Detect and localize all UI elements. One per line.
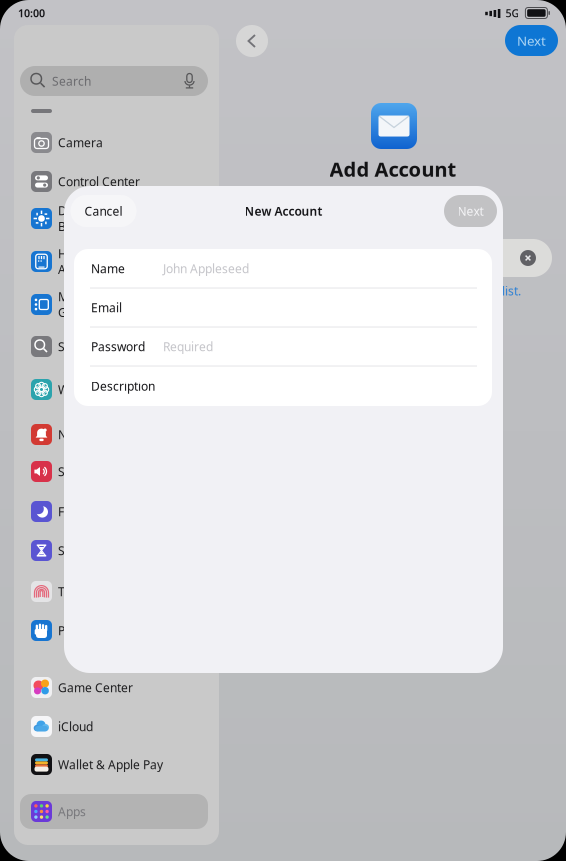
staticText: Name <box>91 260 125 276</box>
button[interactable]: Wallpaper <box>20 372 208 407</box>
button[interactable]: Search <box>20 329 208 364</box>
button[interactable]: Wallet & Apple Pay <box>20 747 208 782</box>
staticText: Camera <box>58 134 103 150</box>
button[interactable]: Sounds <box>20 454 208 489</box>
button[interactable]: Camera <box>20 125 208 160</box>
button[interactable]: Apps <box>20 794 208 829</box>
button[interactable]: Touch ID & Passcode <box>20 574 208 609</box>
staticText: list. <box>502 283 521 299</box>
staticText: Privacy & Security <box>58 622 158 638</box>
button[interactable]: Multitasking & <box>20 287 208 322</box>
staticText: Password <box>91 338 145 354</box>
staticText: Next <box>517 32 546 49</box>
button[interactable]: Notifications <box>20 417 208 452</box>
button[interactable]: Game Center <box>20 670 208 705</box>
button[interactable]: Back <box>236 25 268 57</box>
staticText: App Library <box>58 261 122 277</box>
staticText: Display & <box>58 203 111 218</box>
staticText: Focus <box>58 503 90 519</box>
staticText: Wallpaper <box>58 381 115 397</box>
staticText: Email <box>91 299 122 315</box>
staticText: Add Account <box>329 156 456 182</box>
button[interactable]: Focus <box>20 494 208 529</box>
staticText: Next <box>457 203 483 219</box>
staticText: Brightness <box>58 218 118 234</box>
staticText: Description <box>91 378 155 394</box>
button[interactable]: Display & <box>20 201 208 236</box>
staticText: Gestures <box>58 304 109 320</box>
staticText: Control Center <box>58 173 140 189</box>
button[interactable]: Home Screen & <box>20 244 208 279</box>
staticText: Notifications <box>58 426 128 442</box>
staticText: Search <box>58 338 97 354</box>
staticText: Wallet & Apple Pay <box>58 756 163 772</box>
staticText: Screen Time <box>58 542 128 558</box>
button[interactable]: Privacy & Security <box>20 613 208 648</box>
staticText: Cancel <box>84 203 122 219</box>
button[interactable]: Next <box>444 195 497 227</box>
staticText: Search <box>52 73 91 89</box>
button[interactable]: Cancel <box>70 195 136 227</box>
staticText: Game Center <box>58 679 133 695</box>
staticText: Home Screen & <box>58 246 146 261</box>
staticText: iCloud <box>58 718 93 734</box>
staticText: New Account <box>244 203 322 219</box>
staticText: Touch ID & Passcode <box>58 583 175 599</box>
staticText: Apps <box>58 803 86 819</box>
staticText: Sounds <box>58 463 99 479</box>
button[interactable]: Clear text <box>520 250 536 266</box>
staticText: 10:00 <box>18 6 45 20</box>
staticText: Required <box>163 338 213 354</box>
button[interactable]: Control Center <box>20 164 208 199</box>
button[interactable]: Next <box>505 25 558 56</box>
button[interactable]: Screen Time <box>20 533 208 568</box>
staticText: Multitasking & <box>58 289 138 304</box>
staticText: 5G <box>505 6 519 20</box>
button[interactable]: iCloud <box>20 709 208 744</box>
staticText: John Appleseed <box>163 260 249 276</box>
